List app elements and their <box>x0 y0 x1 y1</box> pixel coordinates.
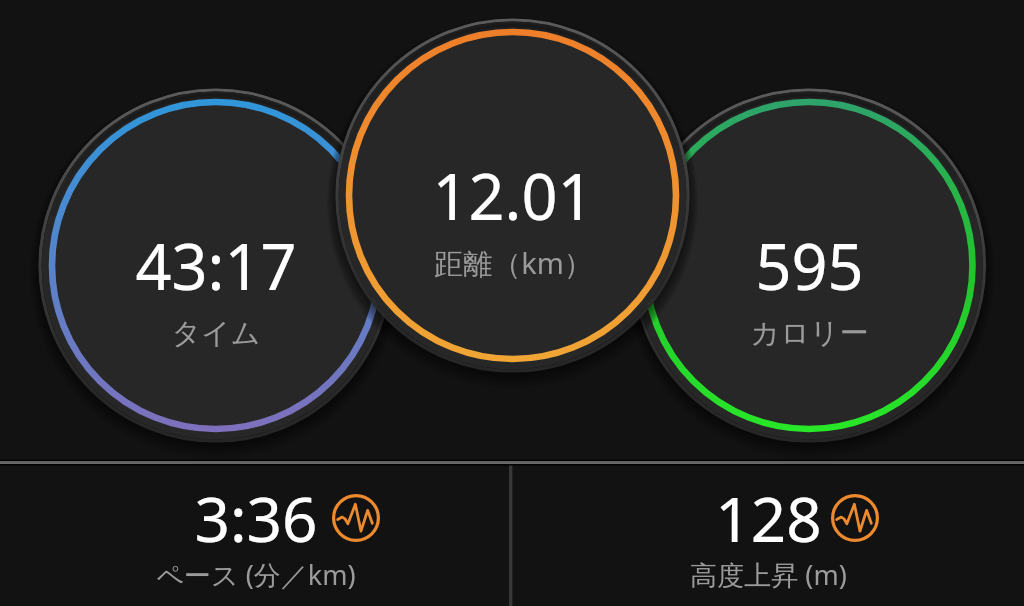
staticText: カロリー <box>750 315 869 352</box>
staticText: 高度上昇 (m) <box>690 556 847 593</box>
staticText: 128 <box>715 476 822 560</box>
button[interactable]: Heart rate detail <box>831 494 879 542</box>
staticText: 3:36 <box>194 476 318 560</box>
button[interactable]: 595 <box>639 96 979 436</box>
staticText: 距離（km） <box>434 243 593 283</box>
staticText: タイム <box>171 315 261 352</box>
staticText: ペース (分／km) <box>156 556 356 593</box>
button[interactable]: Heart rate detail <box>332 494 380 542</box>
button[interactable]: 12.01 <box>343 26 683 366</box>
button[interactable]: 128 <box>512 466 1024 606</box>
staticText: 595 <box>755 223 864 309</box>
staticText: 12.01 <box>432 153 594 239</box>
button[interactable]: 43:17 <box>46 96 386 436</box>
staticText: 43:17 <box>135 223 297 309</box>
button[interactable]: 3:36 <box>0 466 512 606</box>
